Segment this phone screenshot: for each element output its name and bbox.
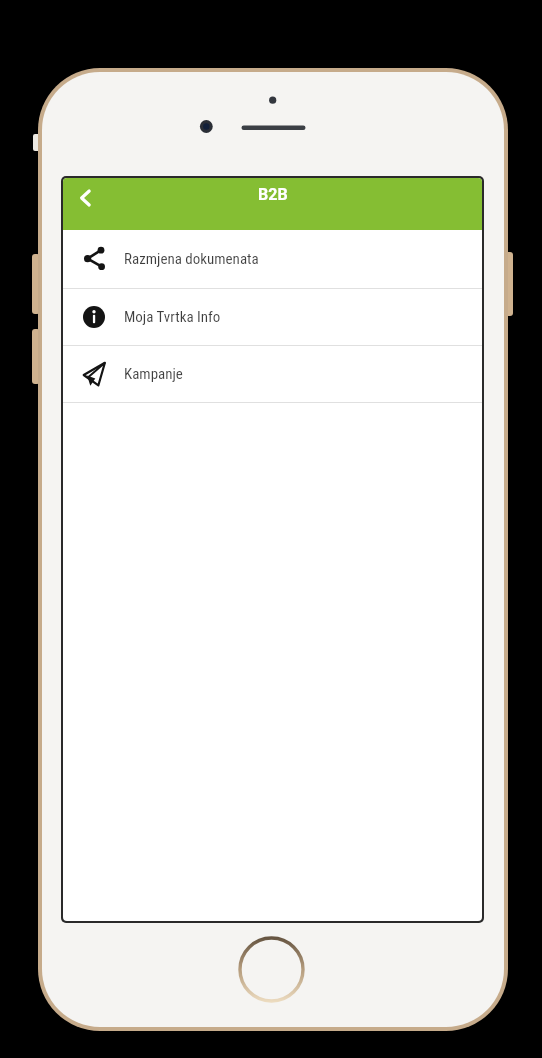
button[interactable]: Kampanje (63, 346, 482, 402)
staticText: B2B (258, 185, 288, 204)
staticText: Kampanje (124, 365, 183, 383)
button[interactable] (63, 178, 111, 230)
button[interactable]: Razmjena dokumenata (63, 230, 482, 288)
button[interactable]: Moja Tvrtka Info (63, 289, 482, 345)
staticText: Moja Tvrtka Info (124, 308, 221, 326)
staticText: Razmjena dokumenata (124, 250, 259, 268)
